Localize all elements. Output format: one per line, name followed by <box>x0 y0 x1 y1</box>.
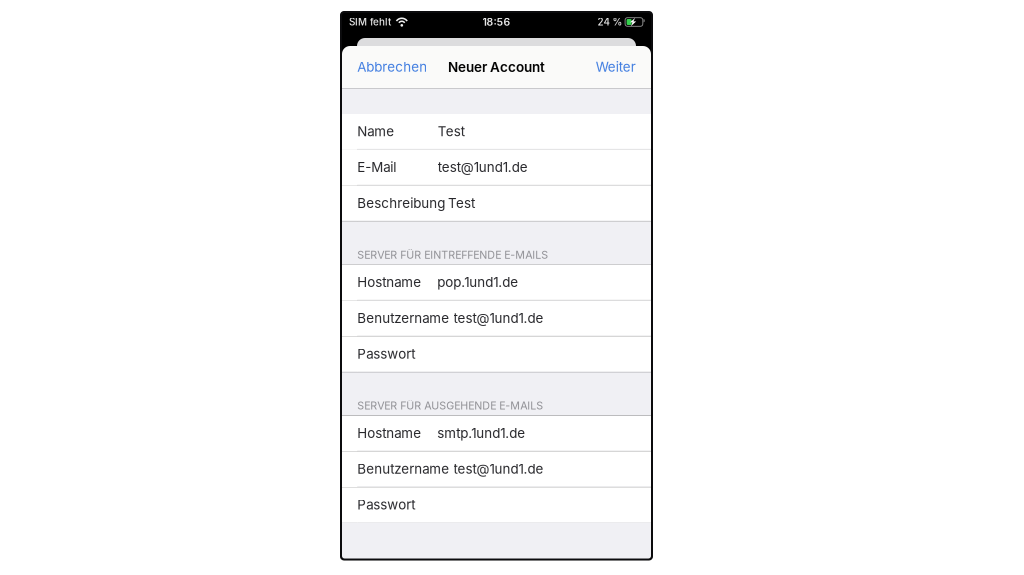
staticText: smtp.1und1.de <box>437 425 525 441</box>
button[interactable]: Hostname <box>342 265 651 301</box>
staticText: Benutzername <box>357 310 449 326</box>
staticText: Weiter <box>596 59 636 75</box>
button[interactable]: E-Mail <box>342 150 651 186</box>
staticText: Name <box>357 123 394 139</box>
button[interactable]: Abbrechen <box>342 46 437 88</box>
button[interactable]: Weiter <box>586 46 651 88</box>
staticText: SERVER FÜR EINTREFFENDE E-MAILS <box>357 248 548 261</box>
button[interactable]: Name <box>342 114 651 150</box>
staticText: Beschreibung <box>357 195 445 211</box>
staticText: 24 % <box>598 16 623 28</box>
staticText: test@1und1.de <box>454 310 544 326</box>
staticText: 18:56 <box>482 16 510 28</box>
staticText: SIM fehlt <box>349 16 391 28</box>
button[interactable]: Benutzername <box>342 301 651 336</box>
staticText: Passwort <box>357 497 415 513</box>
staticText: test@1und1.de <box>454 461 544 477</box>
staticText: Abbrechen <box>357 59 427 75</box>
staticText: Passwort <box>357 346 415 362</box>
staticText: test@1und1.de <box>438 159 528 175</box>
staticText: Hostname <box>357 425 421 441</box>
staticText: Test <box>448 195 475 211</box>
button[interactable]: Beschreibung <box>342 186 651 221</box>
button[interactable]: Passwort <box>342 487 651 523</box>
staticText: SERVER FÜR AUSGEHENDE E-MAILS <box>357 399 543 412</box>
button[interactable]: Benutzername <box>342 451 651 487</box>
staticText: Hostname <box>357 274 421 290</box>
staticText: Test <box>438 123 465 139</box>
staticText: pop.1und1.de <box>437 274 518 290</box>
button[interactable]: Hostname <box>342 416 651 451</box>
staticText: Benutzername <box>357 461 449 477</box>
staticText: E-Mail <box>357 159 396 175</box>
staticText: Neuer Account <box>448 59 545 75</box>
button[interactable]: Passwort <box>342 336 651 372</box>
